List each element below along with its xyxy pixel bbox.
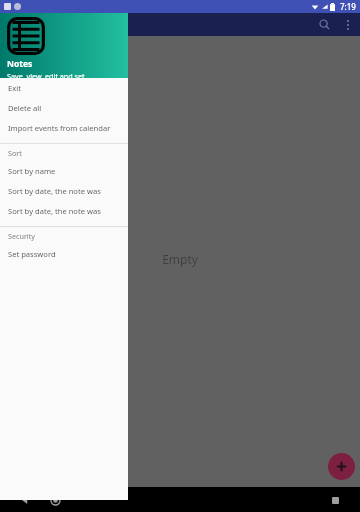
button[interactable]: Sort by name [0, 161, 128, 181]
staticText: Import events from calendar [8, 123, 111, 133]
staticText: Sort by date, the note was added [8, 186, 124, 196]
button[interactable]: Sort by date, the note was edited [0, 201, 128, 221]
button[interactable]: Set password [0, 244, 128, 264]
button[interactable]: Import events from calendar [0, 118, 128, 138]
button[interactable]: More options [336, 13, 360, 36]
button[interactable]: Add note [328, 453, 355, 480]
button[interactable]: Delete all [0, 98, 128, 118]
staticText: Save, view, edit and set notifications. [7, 71, 128, 78]
staticText: Sort [8, 148, 22, 158]
button[interactable]: Home [45, 490, 65, 510]
button[interactable]: Exit [0, 78, 128, 98]
button[interactable]: Back [15, 490, 35, 510]
button[interactable]: Sort by date, the note was added [0, 181, 128, 201]
button[interactable]: Recents [325, 490, 345, 510]
staticText: Sort by name [8, 166, 56, 176]
staticText: Security [8, 231, 35, 241]
staticText: Empty [162, 251, 198, 267]
button[interactable]: Search [312, 13, 336, 36]
staticText: Sort by date, the note was edited [8, 206, 124, 216]
staticText: Exit [8, 83, 21, 93]
staticText: 7:19 [340, 1, 356, 12]
staticText: Set password [8, 249, 56, 259]
staticText: Notes [7, 58, 33, 70]
staticText: Delete all [8, 103, 42, 113]
